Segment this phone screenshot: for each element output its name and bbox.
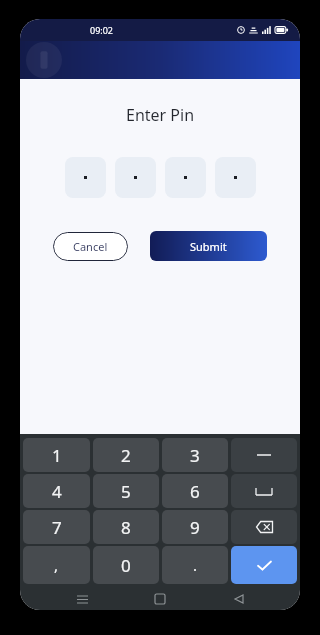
staticText: ,	[54, 555, 59, 575]
staticText: Submit	[190, 239, 227, 254]
button[interactable]: Confirm	[231, 546, 297, 584]
button[interactable]: Home	[143, 588, 177, 610]
button[interactable]: Space	[231, 474, 297, 508]
staticText: 9	[190, 516, 200, 539]
button[interactable]	[215, 157, 256, 198]
staticText: 6	[190, 480, 200, 503]
button[interactable]: 5	[93, 474, 159, 508]
staticText: Cancel	[73, 239, 108, 254]
staticText: 4	[52, 480, 62, 503]
button[interactable]	[165, 157, 206, 198]
button[interactable]: Menu	[65, 588, 99, 610]
staticText: 1	[52, 444, 62, 467]
staticText: 7	[52, 516, 62, 539]
button[interactable]: 7	[23, 510, 90, 544]
staticText: 8	[121, 516, 131, 539]
button[interactable]: 2	[93, 438, 159, 472]
staticText: 0	[121, 554, 131, 577]
button[interactable]	[115, 157, 156, 198]
button[interactable]: Submit	[150, 231, 267, 261]
button[interactable]: 9	[162, 510, 228, 544]
staticText: Enter Pin	[126, 104, 195, 126]
button[interactable]: 1	[23, 438, 90, 472]
button[interactable]: .	[162, 546, 228, 584]
button[interactable]: 4	[23, 474, 90, 508]
staticText: 09:02	[90, 24, 114, 36]
button[interactable]: 3	[162, 438, 228, 472]
button[interactable]: 8	[93, 510, 159, 544]
staticText: 3	[190, 444, 200, 467]
staticText: 2	[121, 444, 131, 467]
button[interactable]: 0	[93, 546, 159, 584]
staticText: 5	[121, 480, 131, 503]
button[interactable]: Backspace	[231, 510, 297, 544]
button[interactable]: Back	[222, 588, 256, 610]
button[interactable]	[231, 438, 297, 472]
button[interactable]: Cancel	[53, 232, 128, 261]
staticText: .	[193, 555, 198, 575]
button[interactable]	[65, 157, 106, 198]
button[interactable]: ,	[23, 546, 90, 584]
button[interactable]: 6	[162, 474, 228, 508]
